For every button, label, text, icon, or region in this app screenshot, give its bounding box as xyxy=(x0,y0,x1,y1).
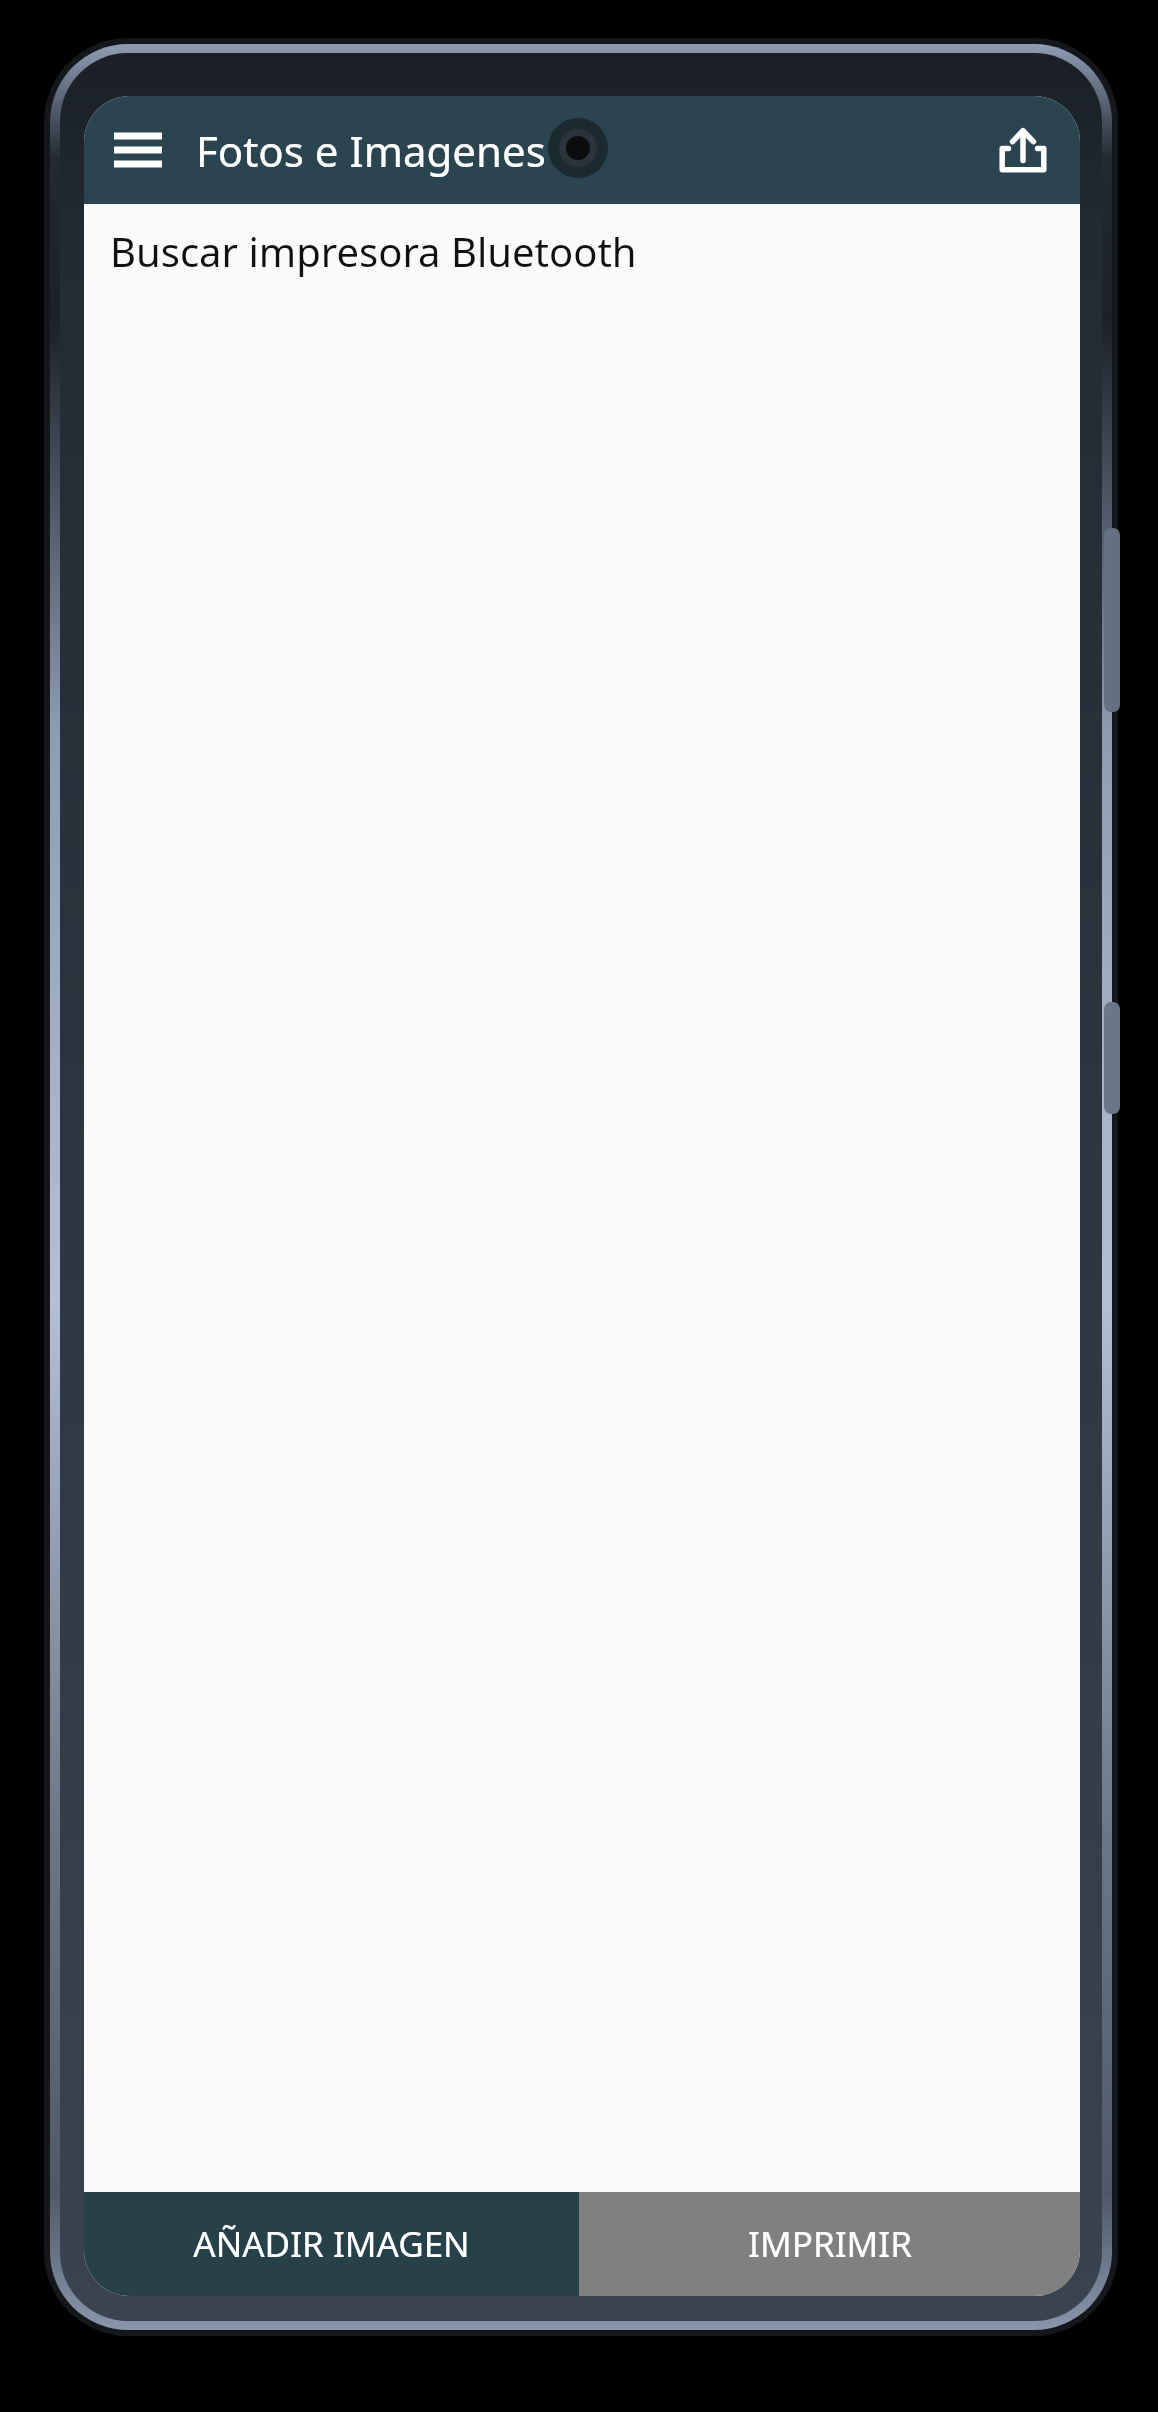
staticText: Fotos e Imagenes xyxy=(196,122,546,179)
button[interactable]: Menu xyxy=(102,114,174,186)
button[interactable]: Share xyxy=(984,111,1062,189)
staticText: IMPRIMIR xyxy=(748,2220,912,2268)
staticText: Buscar impresora Bluetooth xyxy=(110,224,637,278)
button[interactable]: AÑADIR IMAGEN xyxy=(84,2192,579,2296)
button[interactable]: IMPRIMIR xyxy=(579,2192,1080,2296)
staticText: AÑADIR IMAGEN xyxy=(193,2220,470,2268)
